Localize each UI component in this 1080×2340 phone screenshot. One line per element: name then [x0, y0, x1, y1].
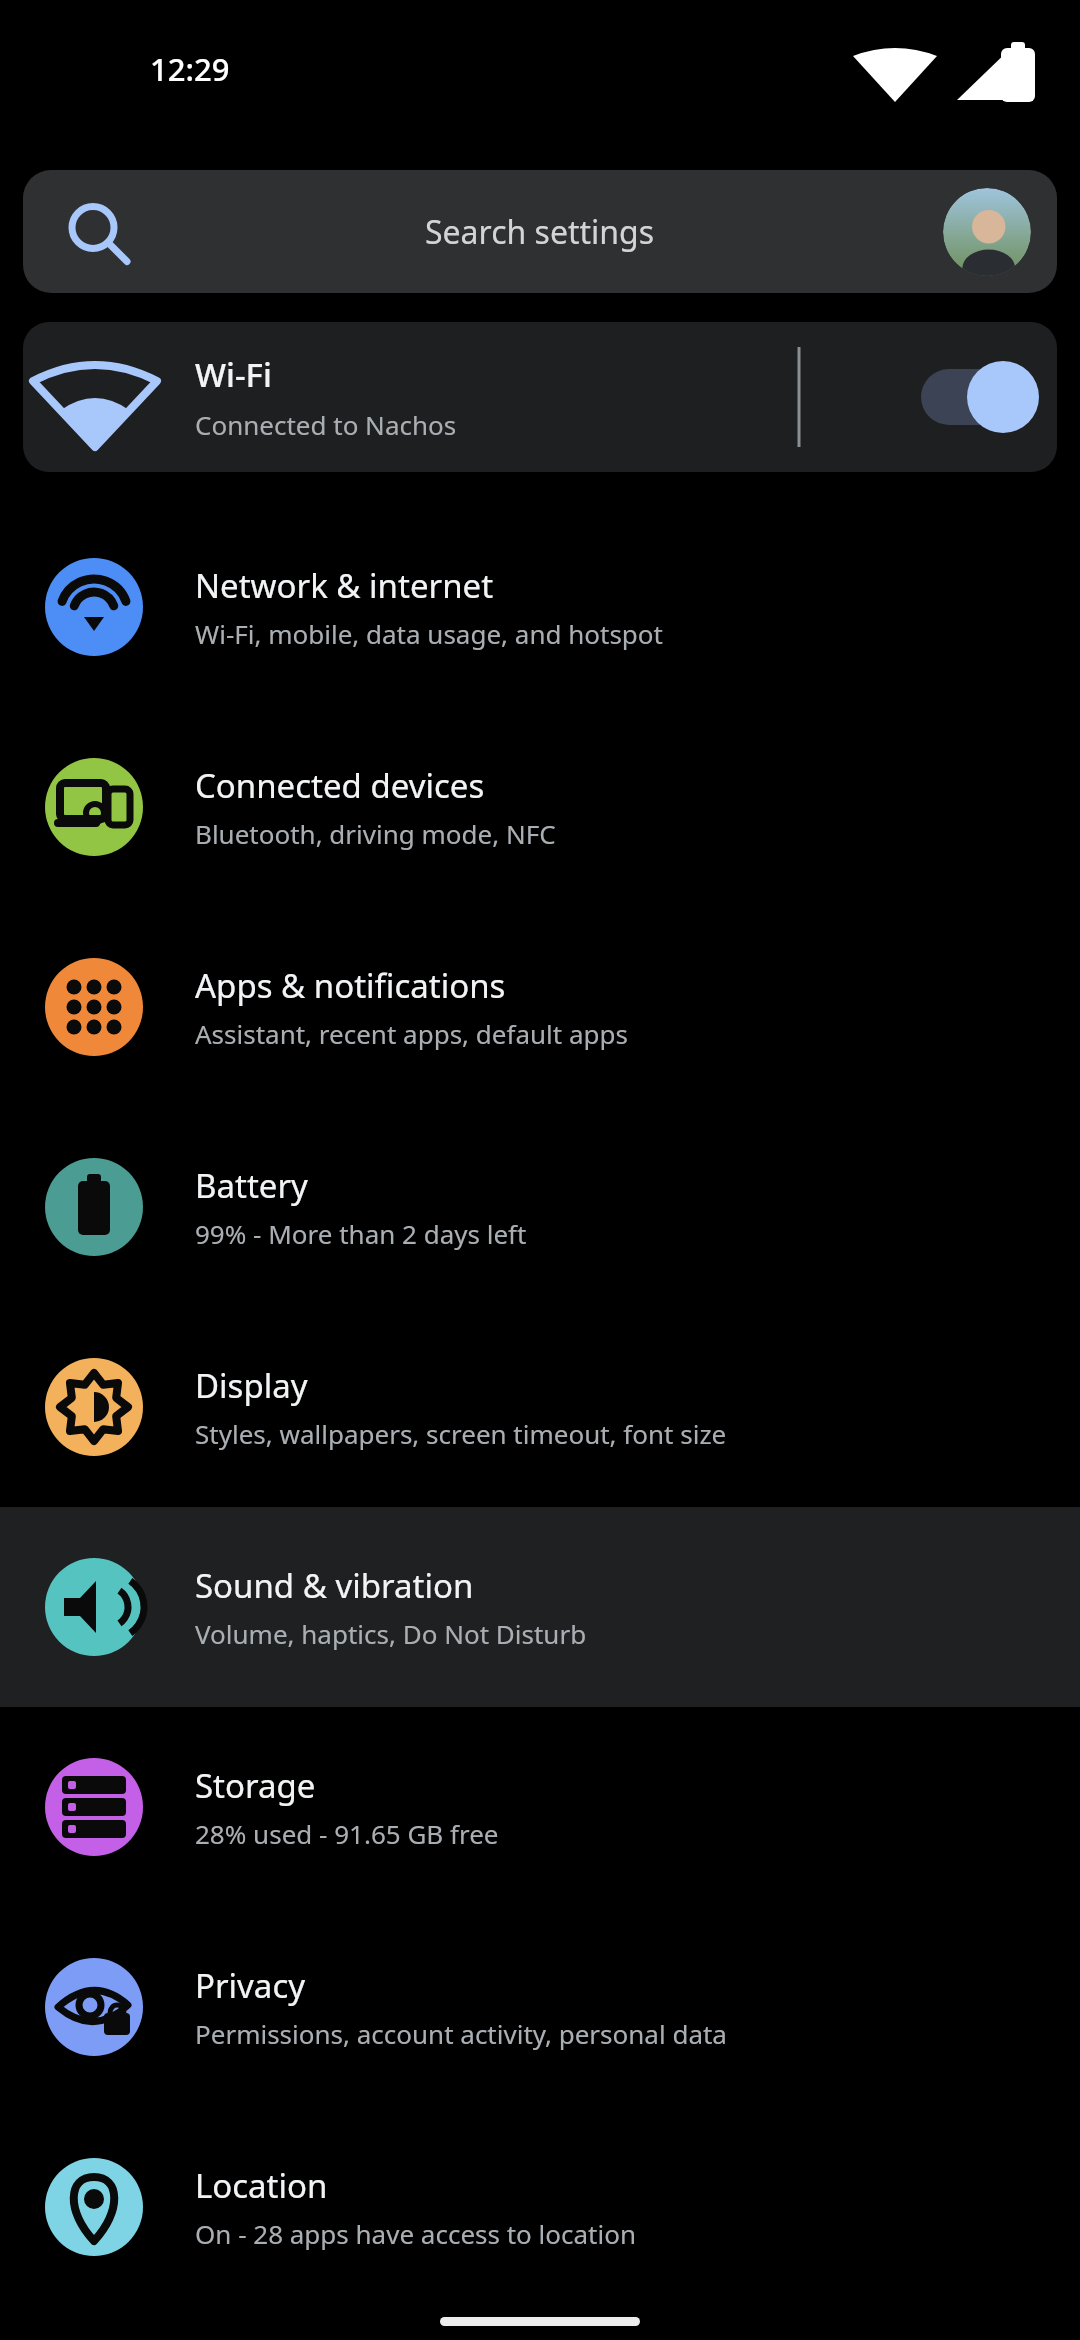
staticText: 28% used - 91.65 GB free — [195, 1816, 499, 1851]
button[interactable]: Battery — [0, 1107, 1080, 1307]
button[interactable]: Location — [0, 2107, 1080, 2307]
staticText: Privacy — [195, 1963, 306, 2008]
staticText: Assistant, recent apps, default apps — [195, 1016, 628, 1051]
staticText: Storage — [195, 1763, 316, 1808]
staticText: Search settings — [425, 210, 655, 254]
staticText: On - 28 apps have access to location — [195, 2216, 636, 2251]
button[interactable]: Search settings — [23, 170, 1057, 293]
button[interactable]: Storage — [0, 1707, 1080, 1907]
button[interactable]: Wi-Fi — [23, 322, 1057, 472]
staticText: Styles, wallpapers, screen timeout, font… — [195, 1416, 727, 1451]
staticText: Permissions, account activity, personal … — [195, 2016, 727, 2051]
staticText: Display — [195, 1363, 308, 1408]
staticText: Connected devices — [195, 763, 485, 808]
staticText: Apps & notifications — [195, 963, 506, 1008]
staticText: Location — [195, 2163, 328, 2208]
staticText: Wi-Fi, mobile, data usage, and hotspot — [195, 616, 663, 651]
button[interactable]: Privacy — [0, 1907, 1080, 2107]
staticText: 12:29 — [150, 48, 230, 90]
button[interactable]: Account — [943, 188, 1031, 276]
staticText: 99% - More than 2 days left — [195, 1216, 527, 1251]
button[interactable]: Apps & notifications — [0, 907, 1080, 1107]
staticText: Volume, haptics, Do Not Disturb — [195, 1616, 587, 1651]
button[interactable]: Connected devices — [0, 707, 1080, 907]
staticText: Wi-Fi — [195, 352, 272, 397]
button[interactable]: Network & internet — [0, 507, 1080, 707]
staticText: Network & internet — [195, 563, 494, 608]
button[interactable]: Sound & vibration — [0, 1507, 1080, 1707]
staticText: Connected to Nachos — [195, 407, 457, 442]
staticText: Bluetooth, driving mode, NFC — [195, 816, 556, 851]
staticText: Sound & vibration — [195, 1563, 474, 1608]
staticText: Battery — [195, 1163, 308, 1208]
button[interactable]: Display — [0, 1307, 1080, 1507]
button[interactable]: Wi-Fi toggle, on — [907, 352, 1027, 442]
